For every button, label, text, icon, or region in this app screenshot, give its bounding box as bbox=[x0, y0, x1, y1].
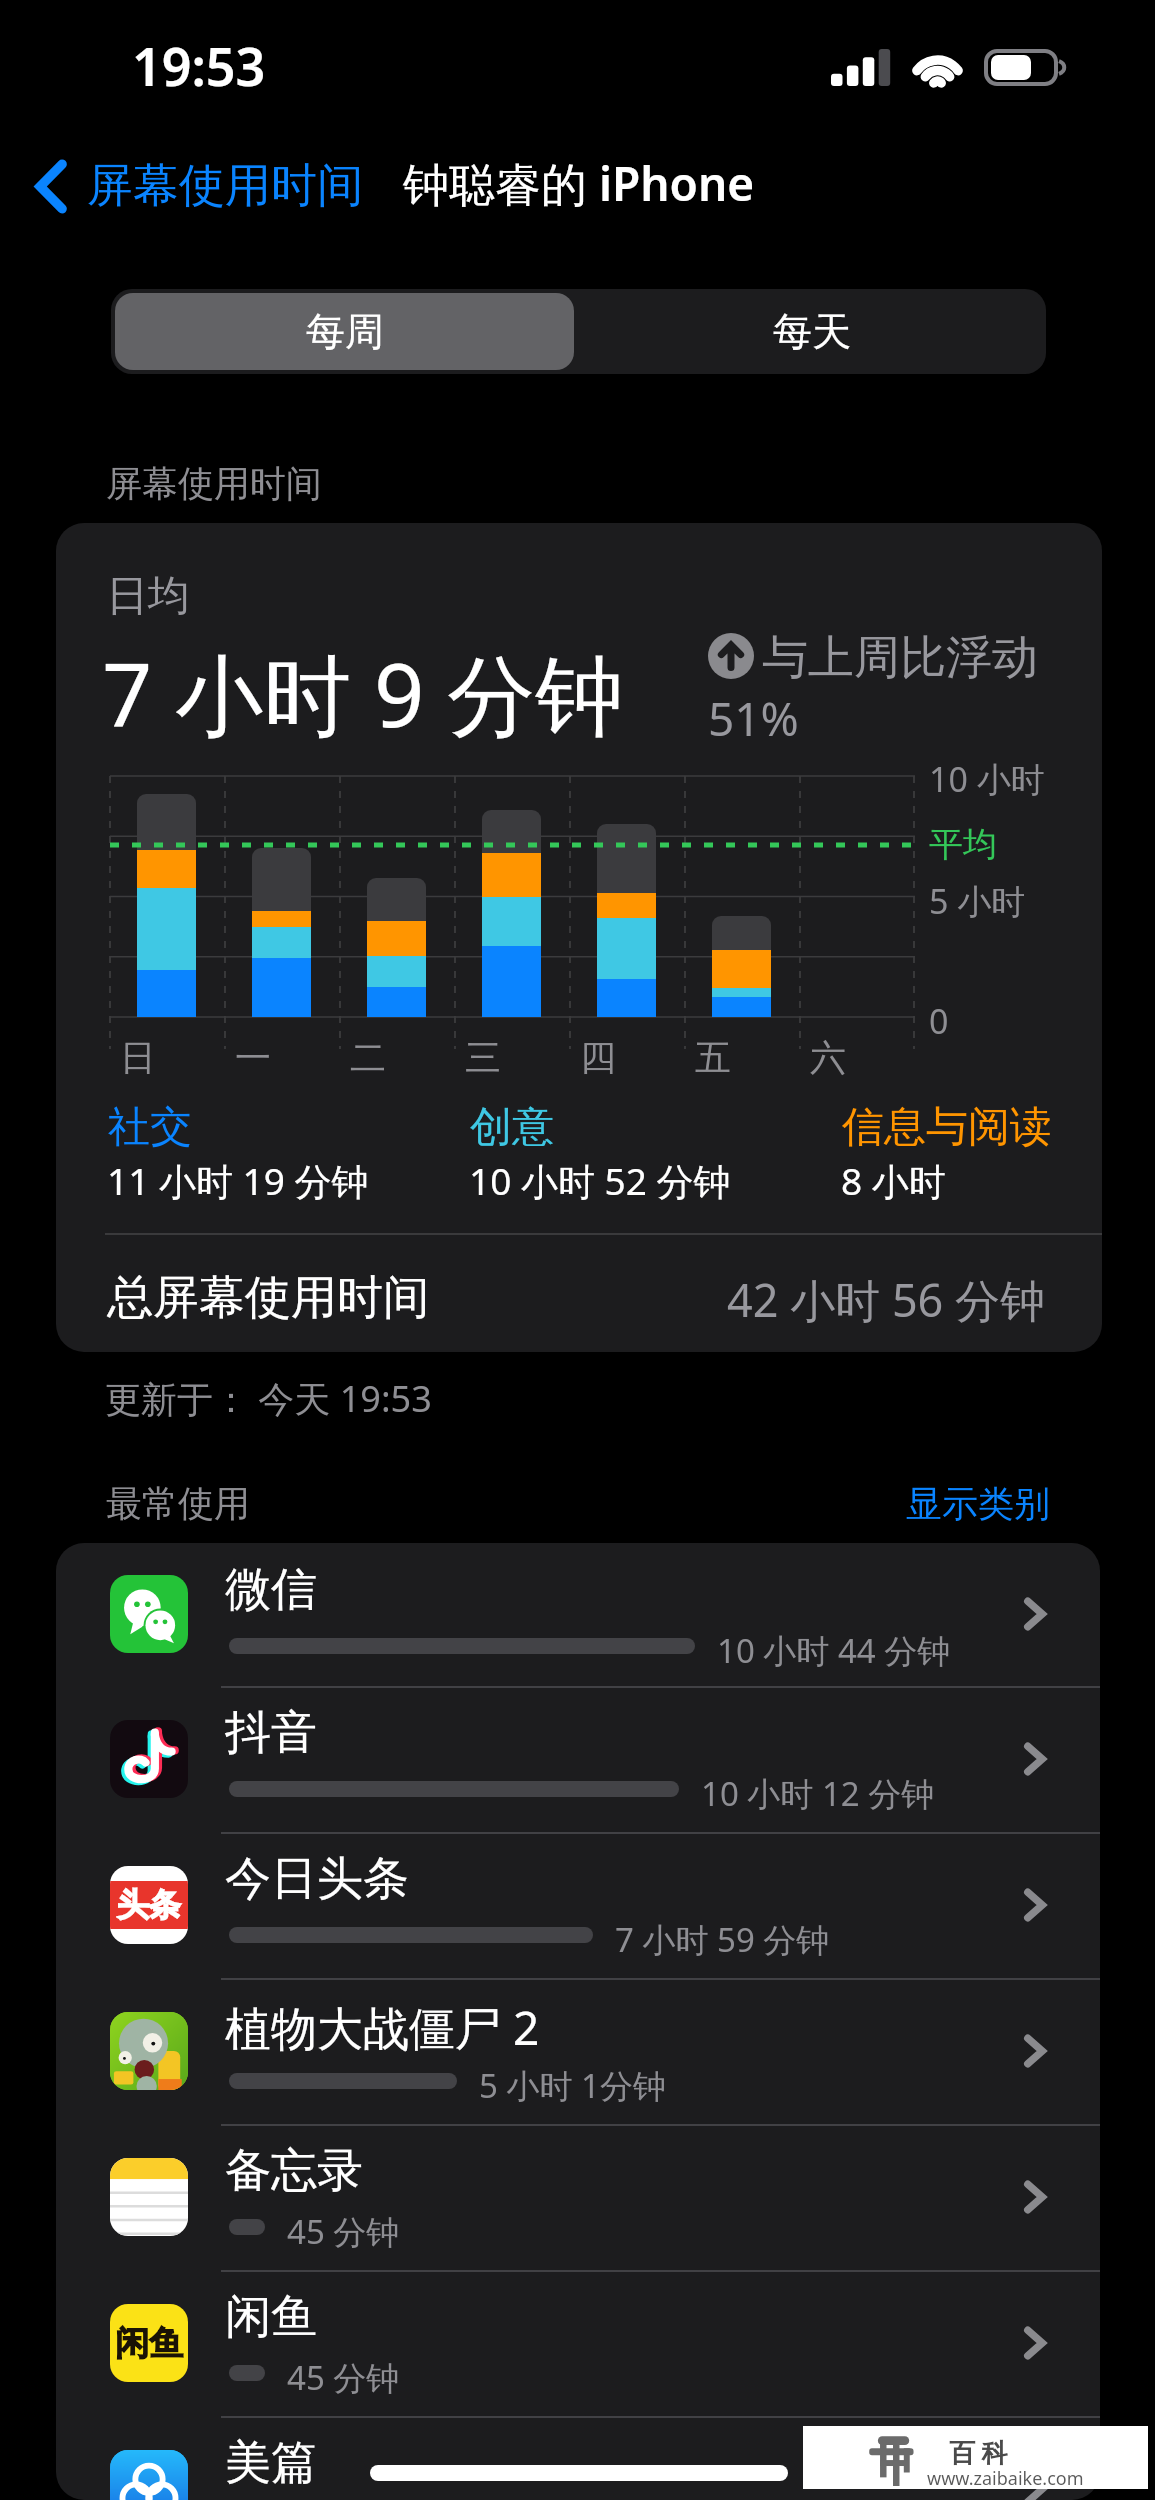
button[interactable]: 抖音 bbox=[56, 1686, 1100, 1832]
staticText: 抖音 bbox=[225, 1704, 317, 1762]
staticText: 19:53 bbox=[132, 30, 266, 101]
staticText: 与上周比浮动 bbox=[762, 629, 1038, 687]
staticText: 头条 bbox=[117, 1885, 181, 1925]
other: 备忘录 bbox=[1025, 2181, 1045, 2213]
staticText: 每周 bbox=[306, 307, 384, 356]
staticText: 六 bbox=[810, 1035, 846, 1080]
staticText: 10 小时 bbox=[929, 756, 1045, 802]
staticText: 每天 bbox=[773, 307, 851, 356]
button[interactable]: 每周 bbox=[115, 293, 574, 370]
staticText: 总屏幕使用时间 bbox=[107, 1269, 429, 1327]
button[interactable]: 微信 bbox=[56, 1543, 1100, 1686]
staticText: 最常使用 bbox=[106, 1481, 250, 1526]
button[interactable]: 美篇 bbox=[56, 2416, 1100, 2500]
staticText: 7 小时 59 分钟 bbox=[615, 1917, 830, 1962]
button[interactable]: 每天 bbox=[578, 289, 1046, 374]
staticText: 创意 bbox=[470, 1101, 554, 1154]
other: 美篇 bbox=[1025, 2473, 1045, 2500]
button[interactable]: 闲鱼 bbox=[56, 2270, 1100, 2416]
staticText: 二 bbox=[350, 1035, 386, 1080]
other: 闲鱼 bbox=[1025, 2327, 1045, 2359]
staticText: 备忘录 bbox=[225, 2142, 363, 2200]
staticText: 10 小时 52 分钟 bbox=[469, 1155, 731, 1206]
staticText: 45 分钟 bbox=[287, 2209, 400, 2254]
staticText: 闲鱼 bbox=[115, 2322, 183, 2365]
button[interactable]: 返回 屏幕使用时间 bbox=[26, 150, 373, 222]
staticText: 社交 bbox=[108, 1101, 192, 1154]
staticText: 闲鱼 bbox=[225, 2288, 317, 2346]
staticText: 今日头条 bbox=[225, 1850, 409, 1908]
button[interactable]: 显示类别 bbox=[898, 1473, 1058, 1534]
other: 今日头条 bbox=[1025, 1889, 1045, 1921]
other: 植物大战僵尸 2 bbox=[1025, 2035, 1045, 2067]
staticText: 四 bbox=[580, 1035, 616, 1080]
button[interactable]: 植物大战僵尸 2 bbox=[56, 1978, 1100, 2124]
staticText: www.zaibaike.com bbox=[927, 2466, 1084, 2491]
staticText: 钟聪睿的 iPhone bbox=[403, 152, 755, 215]
staticText: 0 bbox=[929, 998, 949, 1044]
staticText: 10 小时 44 分钟 bbox=[717, 1628, 951, 1673]
staticText: 45 分钟 bbox=[287, 2355, 400, 2400]
staticText: 一 bbox=[235, 1035, 271, 1080]
staticText: 三 bbox=[465, 1035, 501, 1080]
staticText: 植物大战僵尸 2 bbox=[225, 1996, 540, 2059]
staticText: 美篇 bbox=[225, 2434, 317, 2492]
other: 微信 bbox=[1025, 1598, 1045, 1630]
staticText: 7 小时 9 分钟 bbox=[102, 633, 624, 753]
staticText: 51% bbox=[708, 687, 799, 750]
staticText: 显示类别 bbox=[906, 1481, 1050, 1526]
other: 抖音 bbox=[1025, 1743, 1045, 1775]
staticText: 平均 bbox=[929, 823, 997, 866]
staticText: 5 小时 bbox=[929, 878, 1026, 924]
staticText: 10 小时 12 分钟 bbox=[701, 1771, 935, 1816]
staticText: 5 小时 1分钟 bbox=[479, 2063, 666, 2108]
button[interactable]: 头条 bbox=[56, 1832, 1100, 1978]
button[interactable]: 备忘录 bbox=[56, 2124, 1100, 2270]
staticText: 屏幕使用时间 bbox=[106, 461, 322, 506]
staticText: 日均 bbox=[106, 570, 190, 623]
staticText: 屏幕使用时间 bbox=[87, 157, 363, 215]
staticText: 微信 bbox=[225, 1561, 317, 1619]
staticText: 百 科 bbox=[949, 2434, 1008, 2470]
staticText: 42 小时 56 分钟 bbox=[727, 1269, 1046, 1330]
staticText: 信息与阅读 bbox=[842, 1101, 1052, 1154]
staticText: 11 小时 19 分钟 bbox=[107, 1155, 369, 1206]
staticText: 更新于： 今天 19:53 bbox=[105, 1374, 432, 1423]
staticText: 8 小时 bbox=[841, 1155, 946, 1206]
staticText: 五 bbox=[695, 1035, 731, 1080]
staticText: 日 bbox=[120, 1035, 156, 1080]
